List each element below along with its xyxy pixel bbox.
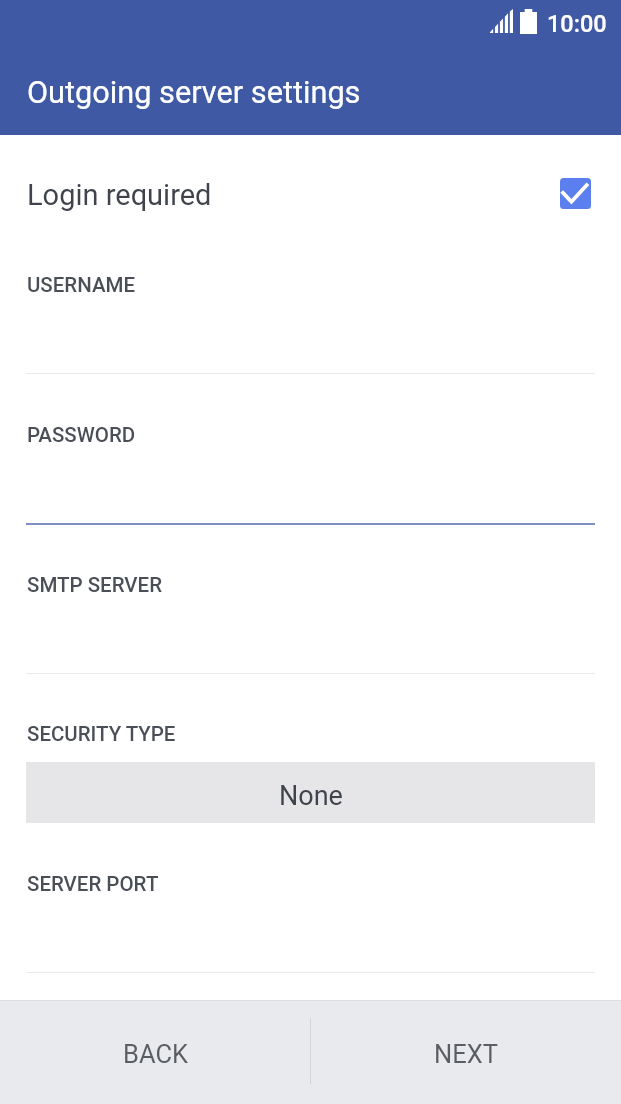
button[interactable]: SERVER PORT bbox=[0, 867, 621, 1017]
staticText: Login required bbox=[27, 178, 212, 212]
staticText: Outgoing server settings bbox=[27, 75, 361, 111]
other: Login required checkbox bbox=[560, 178, 591, 209]
button[interactable]: SMTP SERVER bbox=[0, 568, 621, 718]
staticText: USERNAME bbox=[27, 273, 136, 297]
button[interactable]: BACK bbox=[0, 1000, 310, 1104]
staticText: BACK bbox=[123, 1039, 188, 1069]
button[interactable]: Login required bbox=[0, 135, 621, 252]
staticText: 10:00 bbox=[547, 10, 607, 38]
staticText: NEXT bbox=[434, 1039, 498, 1069]
staticText: SECURITY TYPE bbox=[27, 722, 176, 746]
staticText: PASSWORD bbox=[27, 423, 136, 447]
button[interactable]: SECURITY TYPE bbox=[0, 717, 621, 867]
button[interactable]: None bbox=[26, 762, 595, 823]
staticText: None bbox=[279, 780, 343, 812]
button[interactable]: NEXT bbox=[310, 1000, 621, 1104]
staticText: SERVER PORT bbox=[27, 872, 159, 896]
button[interactable]: PASSWORD bbox=[0, 418, 621, 568]
staticText: SMTP SERVER bbox=[27, 573, 162, 597]
button[interactable]: USERNAME bbox=[0, 268, 621, 418]
